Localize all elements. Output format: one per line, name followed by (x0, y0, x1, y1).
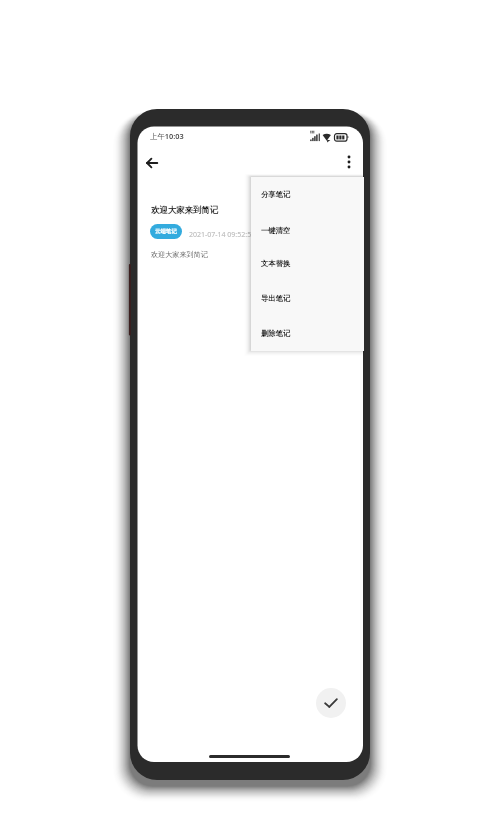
staticText: 导出笔记 (261, 294, 291, 303)
button[interactable]: 文本替换 (251, 246, 364, 281)
button[interactable]: 返回 (141, 152, 163, 174)
button[interactable]: 一键清空 (251, 213, 364, 248)
button[interactable]: 分享笔记 (251, 177, 364, 212)
staticText: 文本替换 (261, 259, 291, 268)
staticText: 欢迎大家来到简记 (151, 250, 208, 259)
staticText: 一键清空 (261, 226, 291, 235)
staticText: 分享笔记 (261, 190, 291, 199)
button[interactable]: 导出笔记 (251, 281, 364, 316)
staticText: 欢迎大家来到简记 (151, 205, 219, 216)
button[interactable]: 云端笔记 (150, 224, 182, 239)
button[interactable]: 删除笔记 (251, 316, 364, 351)
button[interactable]: 保存 (316, 688, 346, 718)
staticText: 2021-07-14 09:52:56 (189, 230, 256, 240)
staticText: 上午10:03 (150, 131, 184, 141)
staticText: 云端笔记 (155, 228, 177, 235)
button[interactable]: 更多选项 (338, 151, 360, 173)
staticText: 删除笔记 (261, 329, 291, 338)
